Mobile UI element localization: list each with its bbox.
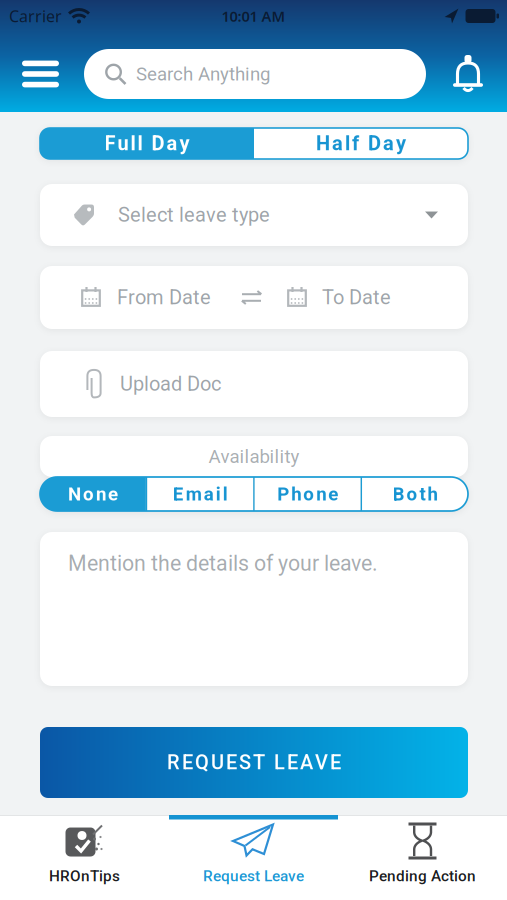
button[interactable]: H a l f D a y xyxy=(254,128,468,159)
button[interactable]: P h o n e xyxy=(255,477,361,511)
staticText: Pending Action xyxy=(369,867,476,885)
button[interactable]: HROnTips xyxy=(0,823,169,885)
button[interactable]: Menu xyxy=(22,61,59,87)
staticText: HROnTips xyxy=(49,867,120,885)
staticText: H a l f D a y xyxy=(316,132,406,155)
staticText: N o n e xyxy=(68,483,118,505)
staticText: To Date xyxy=(322,286,391,309)
staticText: R E Q U E S T L E A V E xyxy=(167,751,341,774)
button[interactable]: Request Leave xyxy=(169,823,338,885)
staticText: Select leave type xyxy=(118,203,270,227)
button[interactable]: From Date to To Date xyxy=(40,266,468,329)
button[interactable]: Pending Action xyxy=(338,823,507,885)
button[interactable]: Leave details xyxy=(40,532,468,686)
staticText: Request Leave xyxy=(203,867,304,885)
staticText: Mention the details of your leave. xyxy=(68,551,378,576)
staticText: From Date xyxy=(117,286,211,309)
button[interactable]: B o t h xyxy=(362,477,468,511)
staticText: B o t h xyxy=(393,483,438,505)
staticText: Carrier xyxy=(9,5,62,27)
button[interactable]: N o n e xyxy=(40,477,146,511)
staticText: P h o n e xyxy=(277,483,338,505)
button[interactable]: F u l l D a y xyxy=(40,128,254,159)
button[interactable]: E m a i l xyxy=(147,477,253,511)
staticText: F u l l D a y xyxy=(104,132,189,155)
button[interactable]: Select leave type xyxy=(40,184,468,246)
staticText: E m a i l xyxy=(173,483,228,505)
staticText: Search Anything xyxy=(136,63,270,85)
staticText: Upload Doc xyxy=(120,372,221,396)
staticText: 10:01 AM xyxy=(221,6,285,26)
button[interactable]: Search Anything xyxy=(84,49,426,99)
button[interactable]: Request Leave xyxy=(40,727,468,798)
staticText: Availability xyxy=(208,446,299,467)
button[interactable]: Notifications xyxy=(452,55,484,93)
button[interactable]: Upload Doc xyxy=(40,351,468,417)
